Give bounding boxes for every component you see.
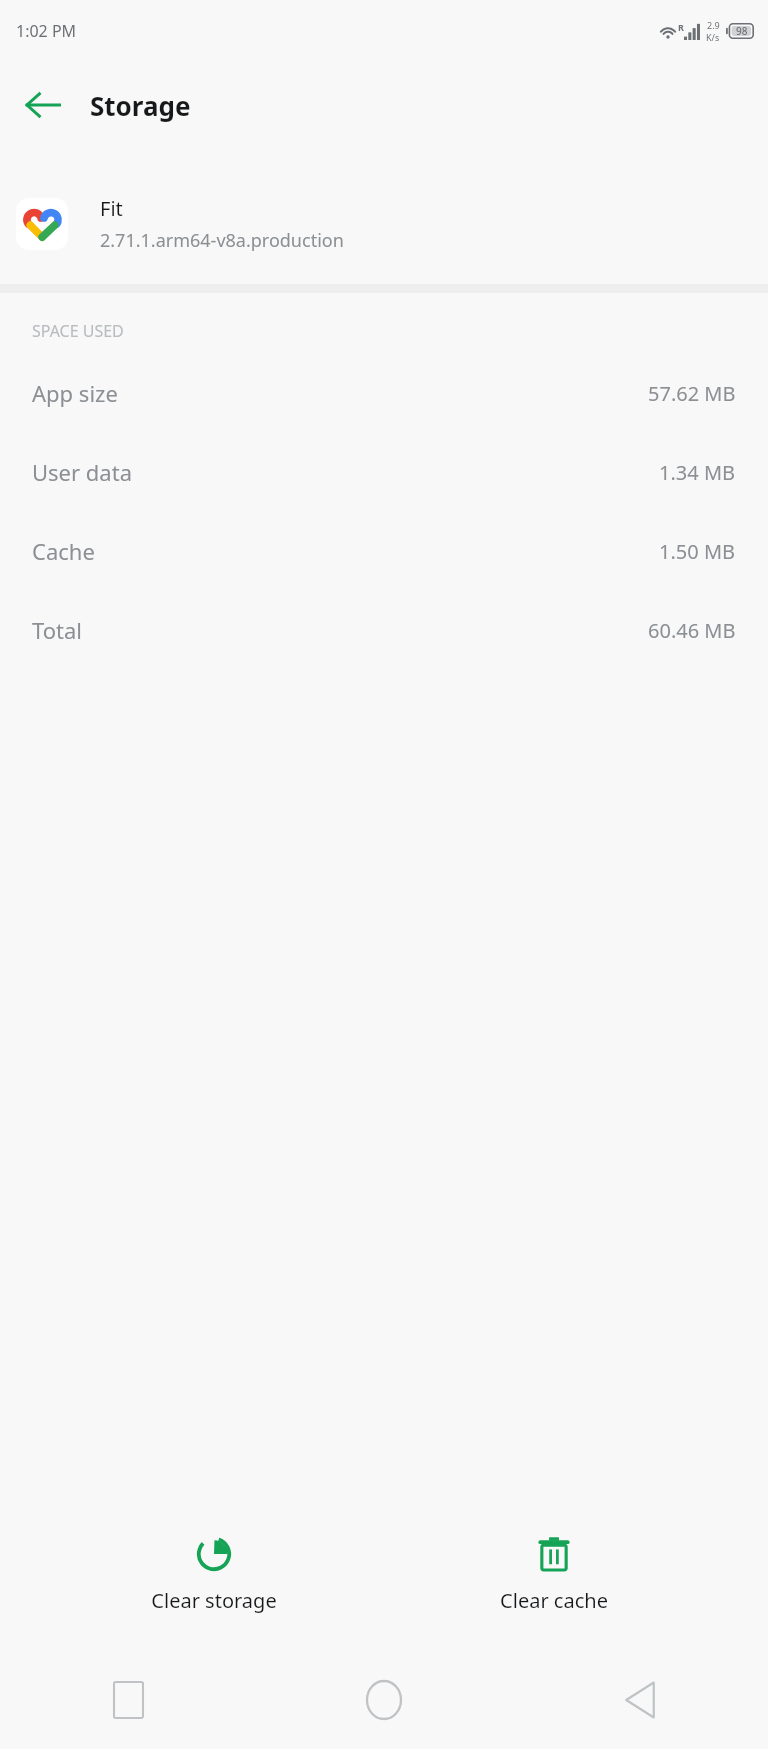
button[interactable]: Clear cache <box>429 1529 679 1620</box>
staticText: 60.46 MB <box>648 617 736 644</box>
staticText: 98 <box>736 24 748 38</box>
staticText: Clear storage <box>151 1587 277 1614</box>
staticText: 1:02 PM <box>16 20 77 42</box>
staticText: Clear cache <box>500 1587 608 1614</box>
staticText: K/s <box>706 31 720 43</box>
staticText: App size <box>32 378 118 408</box>
staticText: 2.9 <box>707 19 720 31</box>
staticText: 2.71.1.arm64-v8a.production <box>100 228 344 253</box>
button[interactable]: User data <box>0 453 768 491</box>
staticText: 1.34 MB <box>659 459 736 486</box>
button[interactable]: Back <box>14 76 72 134</box>
staticText: 1.50 MB <box>659 538 736 565</box>
button[interactable]: Total <box>0 611 768 649</box>
button[interactable]: Home <box>256 1650 512 1749</box>
button[interactable]: Fit <box>0 186 768 262</box>
staticText: Total <box>32 615 82 645</box>
button[interactable]: Cache <box>0 532 768 570</box>
staticText: Cache <box>32 536 95 566</box>
button[interactable]: Clear storage <box>89 1529 339 1620</box>
staticText: R <box>678 21 684 33</box>
staticText: Fit <box>100 195 123 222</box>
button[interactable]: App size <box>0 374 768 412</box>
button[interactable]: Back <box>512 1650 768 1749</box>
staticText: 57.62 MB <box>648 380 736 407</box>
staticText: Storage <box>90 88 191 123</box>
staticText: User data <box>32 457 132 487</box>
staticText: SPACE USED <box>32 320 124 342</box>
button[interactable]: Recent apps <box>0 1650 256 1749</box>
